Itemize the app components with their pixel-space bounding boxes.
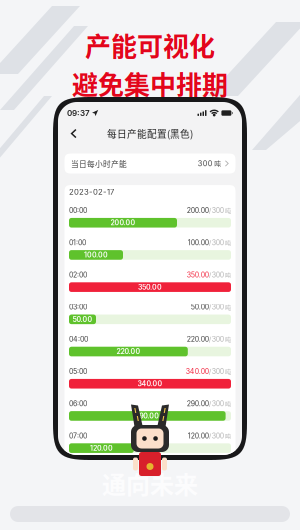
staticText: 04:00 bbox=[69, 335, 88, 343]
staticText: /300 bbox=[209, 303, 224, 311]
staticText: 2023-02-17 bbox=[69, 187, 114, 197]
staticText: 吨 bbox=[225, 431, 231, 440]
staticText: 吨 bbox=[225, 206, 231, 215]
staticText: 300 bbox=[198, 159, 213, 168]
staticText: /300 bbox=[209, 432, 224, 440]
staticText: 05:00 bbox=[69, 367, 87, 376]
staticText: 吨 bbox=[225, 335, 231, 344]
staticText: 产能可视化 bbox=[85, 26, 215, 64]
staticText: 200.00 bbox=[110, 218, 135, 227]
staticText: 350.00 bbox=[138, 283, 162, 291]
staticText: 09:37 bbox=[67, 108, 90, 118]
staticText: 50.00 bbox=[191, 303, 209, 311]
staticText: 吨 bbox=[225, 367, 231, 376]
staticText: 01:00 bbox=[69, 238, 86, 247]
staticText: /300 bbox=[209, 238, 224, 247]
button[interactable]: 当日每小时产能 bbox=[64, 153, 235, 173]
staticText: /300 bbox=[209, 271, 224, 279]
staticText: 00:00 bbox=[69, 206, 87, 215]
staticText: 100.00 bbox=[188, 238, 209, 247]
staticText: /300 bbox=[209, 399, 224, 408]
staticText: 每日产能配置(黑色) bbox=[107, 127, 193, 141]
staticText: 07:00 bbox=[69, 432, 87, 440]
staticText: 120.00 bbox=[90, 444, 113, 452]
button[interactable]: Back bbox=[66, 125, 81, 142]
staticText: 02:00 bbox=[69, 271, 87, 279]
staticText: 50.00 bbox=[72, 315, 92, 324]
staticText: 当日每小时产能 bbox=[71, 158, 127, 169]
staticText: 200.00 bbox=[187, 206, 209, 215]
staticText: 06:00 bbox=[69, 399, 87, 408]
staticText: /300 bbox=[209, 206, 224, 215]
staticText: 220.00 bbox=[187, 335, 209, 343]
staticText: 350.00 bbox=[187, 271, 209, 279]
staticText: 290.00 bbox=[135, 412, 159, 420]
staticText: 120.00 bbox=[188, 432, 209, 440]
staticText: 通向未来 bbox=[102, 466, 198, 501]
staticText: /300 bbox=[209, 367, 224, 376]
staticText: 避免集中排期 bbox=[72, 65, 228, 102]
staticText: 吨 bbox=[225, 270, 231, 279]
staticText: 290.00 bbox=[187, 399, 209, 408]
staticText: 340.00 bbox=[137, 379, 162, 388]
staticText: 吨 bbox=[225, 399, 231, 408]
staticText: 吨 bbox=[225, 303, 231, 311]
staticText: 吨 bbox=[214, 159, 221, 168]
staticText: 100.00 bbox=[84, 251, 108, 259]
staticText: /300 bbox=[209, 335, 224, 343]
staticText: 吨 bbox=[225, 238, 231, 247]
staticText: 03:00 bbox=[69, 303, 87, 311]
staticText: 340.00 bbox=[186, 367, 209, 376]
staticText: 220.00 bbox=[116, 347, 140, 356]
